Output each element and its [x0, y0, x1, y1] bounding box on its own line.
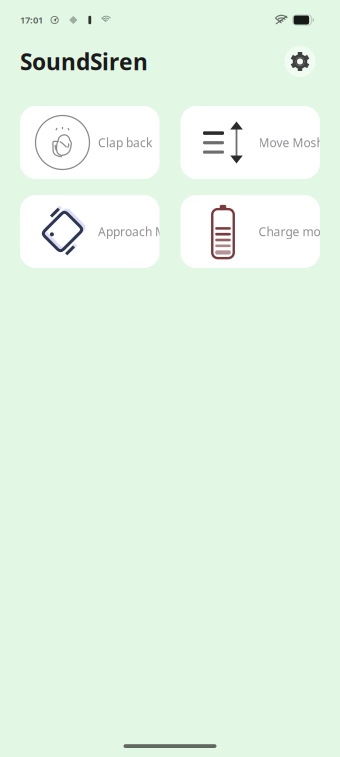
staticText: 17:01: [20, 14, 43, 26]
staticText: SoundSiren: [20, 46, 148, 76]
staticText: Clap back: [98, 134, 152, 150]
button[interactable]: Approach Mode: [20, 195, 159, 268]
button[interactable]: Clap back: [20, 106, 159, 179]
button[interactable]: Move Mosher: [180, 106, 320, 179]
staticText: Charge monitor: [258, 223, 340, 239]
staticText: Approach Mode: [98, 223, 187, 239]
button[interactable]: Settings: [280, 41, 320, 81]
button[interactable]: Charge monitor: [180, 195, 320, 268]
staticText: Move Mosher: [258, 134, 335, 150]
